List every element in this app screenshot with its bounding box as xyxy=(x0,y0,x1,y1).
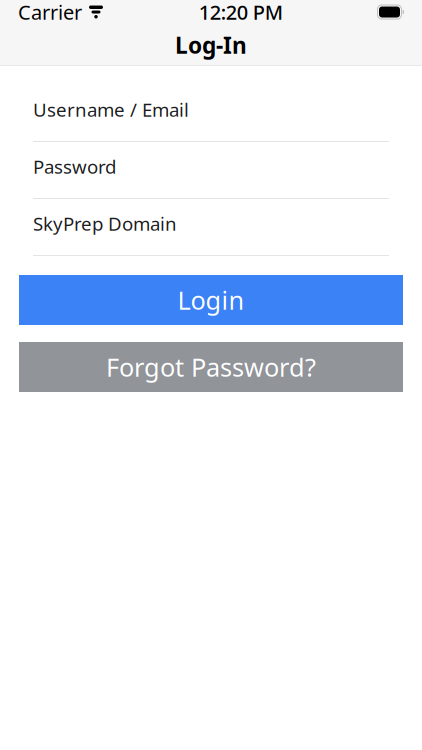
staticText: Carrier xyxy=(18,0,82,25)
staticText: 12:20 PM xyxy=(199,0,283,25)
staticText: Log-In xyxy=(175,30,247,60)
staticText: Forgot Password? xyxy=(106,350,316,384)
staticText: Username / Email xyxy=(33,97,189,122)
button[interactable]: Forgot Password? xyxy=(19,342,403,392)
button[interactable]: Login xyxy=(19,275,403,325)
staticText: SkyPrep Domain xyxy=(33,211,177,236)
staticText: Login xyxy=(177,283,244,317)
staticText: Password xyxy=(33,154,116,179)
